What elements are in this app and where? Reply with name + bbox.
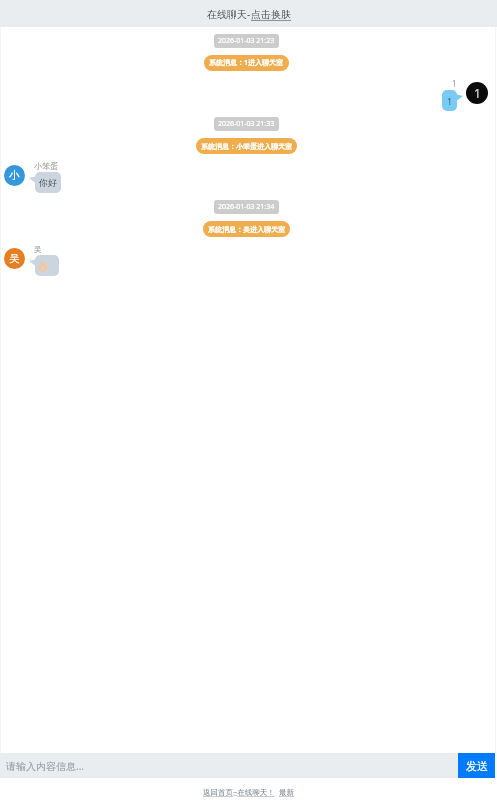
- staticText: 2026-01-03 21:23: [218, 36, 275, 46]
- staticText: 1: [474, 85, 481, 101]
- staticText: 2026-01-03 21:33: [218, 119, 275, 129]
- staticText: 1: [452, 78, 457, 89]
- staticText: 发送: [466, 759, 488, 773]
- staticText: 请输入内容信息...: [6, 759, 85, 773]
- staticText: 系统消息：小笨蛋进入聊天室: [201, 142, 292, 151]
- staticText: 小: [9, 169, 20, 182]
- button[interactable]: 请输入内容信息...: [0, 753, 458, 778]
- staticText: 在线聊天-: [207, 7, 251, 21]
- staticText: 你好: [39, 177, 57, 188]
- button[interactable]: 发送: [458, 753, 495, 778]
- staticText: 吴: [9, 252, 20, 265]
- staticText: 1: [447, 95, 453, 107]
- staticText: 小笨蛋: [34, 161, 58, 171]
- button[interactable]: 点击换肤: [251, 8, 291, 21]
- staticText: 吴: [34, 244, 42, 254]
- button[interactable]: 吴: [0, 244, 497, 276]
- button[interactable]: 1: [0, 78, 497, 111]
- button[interactable]: 最新: [279, 788, 294, 797]
- button[interactable]: 小: [0, 161, 497, 193]
- staticText: 2026-01-03 21:34: [218, 202, 275, 212]
- staticText: 系统消息：吴进入聊天室: [208, 225, 285, 234]
- button[interactable]: 返回首页~在线聊天！: [203, 787, 275, 797]
- staticText: 系统消息：1进入聊天室: [209, 58, 284, 68]
